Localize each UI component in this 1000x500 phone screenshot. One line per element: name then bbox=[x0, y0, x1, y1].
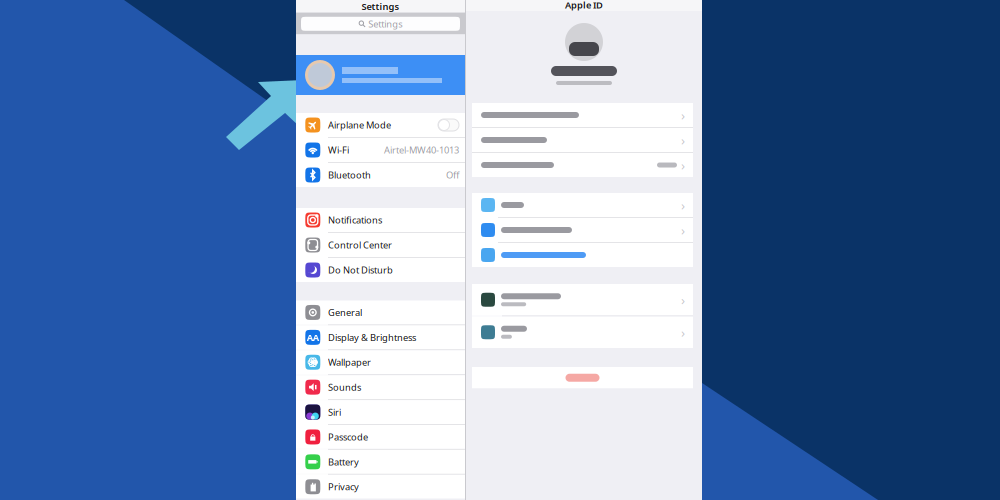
staticText: › bbox=[681, 156, 685, 174]
staticText: Airtel-MW40-1013 bbox=[384, 144, 459, 156]
staticText: Sounds bbox=[328, 381, 361, 393]
button[interactable]: › bbox=[472, 218, 693, 242]
button[interactable]: › bbox=[472, 284, 693, 315]
button[interactable]: › bbox=[472, 193, 693, 217]
staticText: Siri bbox=[328, 406, 341, 418]
staticText: › bbox=[681, 106, 685, 124]
button[interactable]: AA bbox=[296, 325, 465, 349]
staticText: Apple ID bbox=[565, 0, 603, 11]
staticText: Settings bbox=[361, 0, 399, 13]
button[interactable]: Bluetooth bbox=[296, 163, 465, 187]
staticText: › bbox=[681, 221, 685, 239]
button[interactable]: › bbox=[472, 316, 693, 348]
button[interactable]: Passcode bbox=[296, 425, 465, 449]
button[interactable]: Battery bbox=[296, 450, 465, 474]
staticText: › bbox=[681, 323, 685, 341]
button[interactable] bbox=[466, 367, 702, 388]
button[interactable]: Wi-Fi bbox=[296, 138, 465, 162]
button[interactable] bbox=[296, 55, 465, 95]
staticText: Display & Brightness bbox=[328, 331, 416, 344]
button[interactable]: General bbox=[296, 300, 465, 324]
button[interactable]: Privacy bbox=[296, 475, 465, 499]
button[interactable]: › bbox=[472, 153, 693, 177]
staticText: Notifications bbox=[328, 214, 382, 226]
staticText: › bbox=[681, 196, 685, 214]
staticText: Control Center bbox=[328, 239, 392, 251]
button[interactable]: › bbox=[472, 103, 693, 127]
staticText: Wi-Fi bbox=[328, 144, 349, 156]
staticText: Do Not Disturb bbox=[328, 264, 393, 276]
button[interactable]: Airplane Mode bbox=[296, 113, 465, 137]
staticText: Settings bbox=[368, 18, 402, 30]
staticText: AA bbox=[307, 331, 319, 344]
staticText: Passcode bbox=[328, 431, 368, 443]
button[interactable] bbox=[472, 243, 693, 267]
button[interactable]: Do Not Disturb bbox=[296, 258, 465, 282]
button[interactable]: Sounds bbox=[296, 375, 465, 399]
staticText: › bbox=[681, 291, 685, 309]
staticText: Battery bbox=[328, 456, 359, 468]
staticText: Wallpaper bbox=[328, 356, 371, 368]
staticText: › bbox=[681, 131, 685, 149]
button[interactable]: Siri bbox=[296, 400, 465, 424]
staticText: Privacy bbox=[328, 481, 359, 493]
staticText: Airplane Mode bbox=[328, 119, 391, 131]
button[interactable]: Notifications bbox=[296, 208, 465, 232]
button[interactable]: › bbox=[472, 128, 693, 152]
staticText: Off bbox=[446, 169, 459, 181]
button[interactable]: Control Center bbox=[296, 233, 465, 257]
staticText: General bbox=[328, 306, 362, 319]
button[interactable]: Wallpaper bbox=[296, 350, 465, 374]
staticText: Bluetooth bbox=[328, 169, 371, 181]
